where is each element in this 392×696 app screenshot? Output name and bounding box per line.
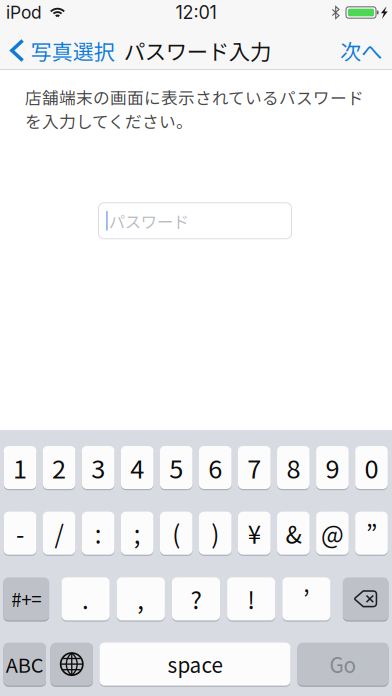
button[interactable]: ) (199, 512, 232, 556)
button[interactable]: 次へ (328, 28, 392, 73)
staticText: #+= (11, 585, 41, 612)
staticText: @ (321, 516, 344, 551)
staticText: : (95, 516, 102, 551)
staticText: 写真選択 (31, 35, 115, 66)
button[interactable]: / (43, 512, 75, 556)
button[interactable]: ABC (3, 643, 46, 687)
staticText: . (82, 581, 89, 616)
staticText: ) (211, 516, 219, 551)
button[interactable]: Delete (343, 577, 388, 622)
button[interactable]: Go (297, 643, 388, 687)
button[interactable]: 1 (4, 446, 36, 490)
button[interactable]: 写真選択 (0, 28, 119, 73)
button[interactable]: ! (227, 577, 275, 622)
button[interactable]: 3 (82, 446, 114, 490)
button[interactable]: 7 (238, 446, 271, 490)
staticText: ( (172, 516, 180, 551)
staticText: 7 (247, 449, 261, 486)
button[interactable]: 2 (43, 446, 75, 490)
staticText: 12:01 (175, 2, 216, 23)
staticText: 2 (52, 449, 66, 486)
button[interactable]: ’ (282, 577, 330, 622)
staticText: iPod (6, 2, 42, 23)
staticText: パスワード (109, 209, 189, 233)
staticText: ¥ (248, 516, 261, 551)
staticText: パスワード入力 (124, 35, 271, 66)
button[interactable]: 5 (160, 446, 192, 490)
button[interactable]: 6 (199, 446, 232, 490)
staticText: ABC (6, 650, 44, 679)
staticText: 4 (130, 449, 144, 486)
staticText: / (55, 516, 64, 551)
staticText: 6 (208, 449, 222, 486)
button[interactable]: 8 (277, 446, 310, 490)
button[interactable]: - (4, 512, 36, 556)
button[interactable]: ( (160, 512, 192, 556)
staticText: 次へ (340, 35, 382, 66)
staticText: 店舗端末の画面に表示されているパスワード (25, 85, 364, 109)
button[interactable]: Next keyboard (50, 643, 93, 687)
button[interactable]: space (99, 643, 290, 687)
staticText: ? (190, 581, 201, 616)
button[interactable]: : (82, 512, 114, 556)
button[interactable]: & (277, 512, 310, 556)
staticText: 3 (91, 449, 105, 486)
button[interactable]: ¥ (238, 512, 271, 556)
staticText: ; (134, 516, 141, 551)
staticText: - (16, 516, 24, 551)
button[interactable]: #+= (3, 577, 49, 622)
staticText: Go (329, 649, 356, 679)
staticText: 9 (325, 449, 339, 486)
staticText: & (285, 516, 301, 551)
staticText: 0 (364, 449, 378, 486)
button[interactable]: , (117, 577, 165, 622)
button[interactable]: 4 (121, 446, 153, 490)
staticText: を入力してください。 (25, 109, 193, 133)
button[interactable]: 9 (316, 446, 349, 490)
button[interactable]: 0 (355, 446, 388, 490)
staticText: ” (366, 516, 377, 551)
staticText: ’ (303, 581, 310, 616)
staticText: space (167, 649, 222, 679)
button[interactable]: . (61, 577, 110, 622)
button[interactable]: @ (316, 512, 349, 556)
staticText: , (137, 581, 144, 616)
button[interactable]: ; (121, 512, 153, 556)
button[interactable]: ? (172, 577, 220, 622)
staticText: 8 (286, 449, 300, 486)
staticText: 5 (169, 449, 183, 486)
staticText: ! (247, 581, 255, 616)
staticText: 1 (13, 449, 27, 486)
button[interactable]: ” (355, 512, 388, 556)
